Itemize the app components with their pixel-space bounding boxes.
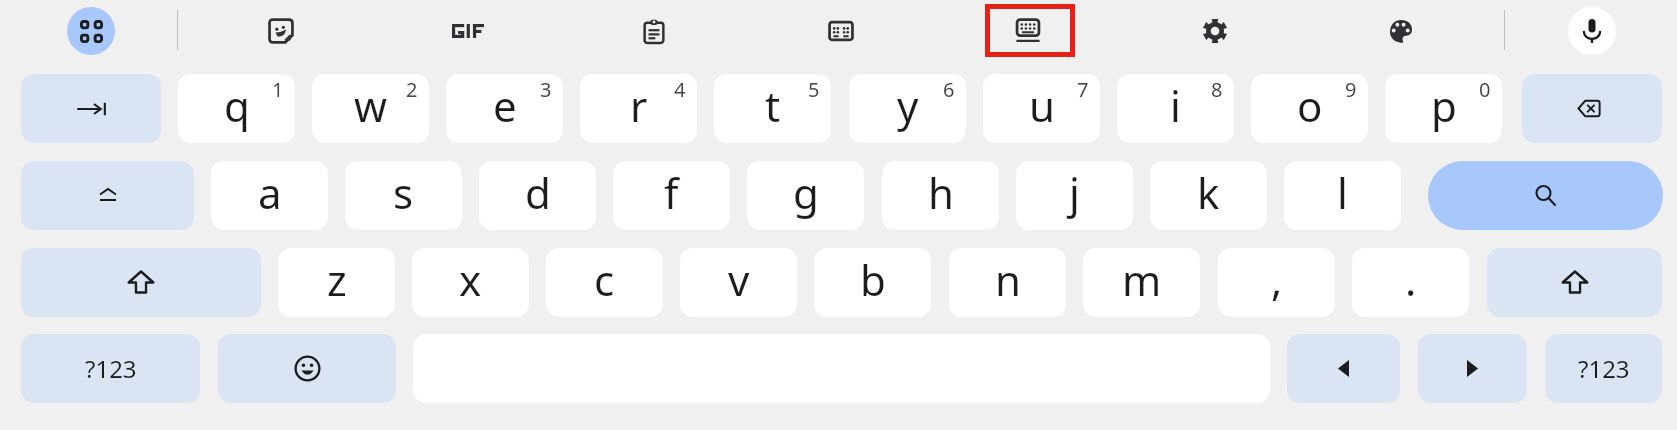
button[interactable]: b [814, 248, 931, 317]
staticText: q [224, 77, 250, 134]
staticText: o [1297, 77, 1323, 134]
button[interactable]: Tab [21, 74, 161, 143]
button[interactable]: e [446, 74, 563, 143]
button[interactable]: u [983, 74, 1100, 143]
button[interactable]: s [345, 161, 462, 230]
button[interactable]: i [1117, 74, 1234, 143]
button[interactable]: x [412, 248, 529, 317]
staticText: v [728, 251, 750, 308]
staticText: t [765, 77, 781, 134]
button[interactable]: Backspace [1522, 74, 1662, 143]
staticText: a [258, 164, 282, 221]
staticText: w [354, 77, 388, 134]
button[interactable]: k [1150, 161, 1267, 230]
button[interactable]: Clipboard [626, 3, 682, 59]
staticText: n [995, 251, 1021, 308]
button[interactable]: , [1218, 248, 1335, 317]
button[interactable]: Caps lock [21, 161, 194, 230]
staticText: 2 [406, 76, 418, 103]
staticText: x [459, 251, 482, 308]
button[interactable]: o [1251, 74, 1368, 143]
button[interactable]: g [747, 161, 864, 230]
staticText: ?123 [85, 352, 137, 385]
button[interactable]: d [479, 161, 596, 230]
staticText: r [630, 77, 648, 134]
staticText: e [493, 77, 517, 134]
button[interactable]: q [178, 74, 295, 143]
button[interactable]: m [1083, 248, 1200, 317]
button[interactable]: Search [1428, 161, 1663, 230]
button[interactable]: One-handed keyboard [1000, 3, 1056, 59]
button[interactable]: GIF [440, 3, 496, 59]
staticText: f [664, 164, 679, 221]
button[interactable]: f [613, 161, 730, 230]
staticText: k [1197, 164, 1220, 221]
button[interactable]: Shift [1487, 248, 1662, 317]
button[interactable]: a [211, 161, 328, 230]
staticText: 3 [540, 76, 552, 103]
button[interactable]: r [580, 74, 697, 143]
button[interactable]: Settings [1187, 3, 1243, 59]
button[interactable]: Move cursor right [1418, 334, 1527, 403]
staticText: , [1271, 251, 1283, 308]
button[interactable]: z [278, 248, 395, 317]
staticText: 9 [1345, 76, 1357, 103]
staticText: p [1431, 77, 1457, 134]
staticText: y [897, 77, 919, 134]
button[interactable]: ?123 [21, 334, 200, 403]
button[interactable]: Stickers [253, 3, 309, 59]
button[interactable]: v [680, 248, 797, 317]
staticText: 8 [1211, 76, 1223, 103]
staticText: ?123 [1578, 352, 1630, 385]
staticText: 5 [808, 76, 820, 103]
staticText: 6 [943, 76, 955, 103]
staticText: m [1122, 251, 1162, 308]
button[interactable]: Move cursor left [1287, 334, 1400, 403]
staticText: i [1170, 77, 1181, 134]
staticText: 1 [272, 76, 284, 103]
button[interactable]: h [882, 161, 999, 230]
staticText: 0 [1479, 76, 1491, 103]
button[interactable]: w [312, 74, 429, 143]
button[interactable]: Shift [21, 248, 261, 317]
staticText: s [393, 164, 414, 221]
staticText: j [1069, 164, 1080, 221]
button[interactable]: c [546, 248, 663, 317]
button[interactable]: Split keyboard [813, 3, 869, 59]
button[interactable]: Themes [1373, 3, 1429, 59]
button[interactable]: Voice input [1568, 7, 1616, 55]
staticText: b [860, 251, 886, 308]
button[interactable]: n [949, 248, 1066, 317]
staticText: z [327, 251, 347, 308]
staticText: l [1337, 164, 1348, 221]
button[interactable]: p [1385, 74, 1502, 143]
staticText: 7 [1077, 76, 1089, 103]
button[interactable]: l [1284, 161, 1401, 230]
staticText: . [1405, 251, 1417, 308]
staticText: u [1029, 77, 1055, 134]
staticText: h [928, 164, 954, 221]
staticText: 4 [674, 76, 686, 103]
staticText: c [594, 251, 615, 308]
button[interactable]: ?123 [1545, 334, 1662, 403]
button[interactable]: Emoji [218, 334, 396, 403]
button[interactable]: t [714, 74, 831, 143]
button[interactable]: y [849, 74, 966, 143]
staticText: d [525, 164, 551, 221]
button[interactable]: . [1352, 248, 1469, 317]
staticText: g [793, 164, 819, 221]
button[interactable]: j [1016, 161, 1133, 230]
button[interactable]: Open features menu [67, 7, 115, 55]
